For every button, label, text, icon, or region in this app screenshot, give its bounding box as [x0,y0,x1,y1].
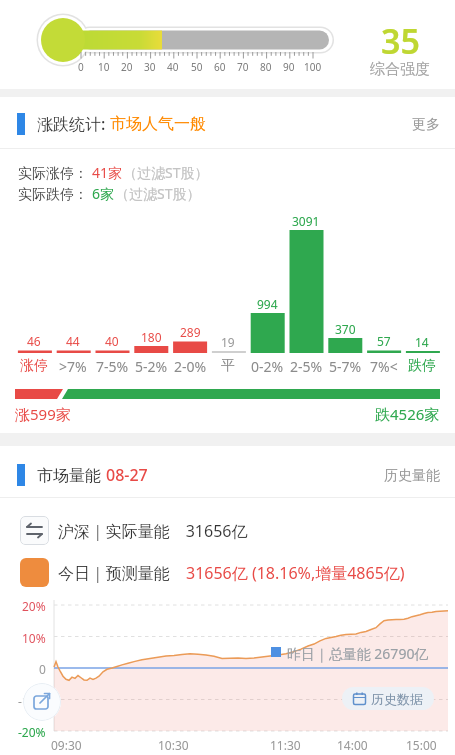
staticText: 实际跌停： [18,184,92,203]
staticText: 14:00 [337,737,368,752]
staticText: 11:30 [270,737,301,752]
staticText: 370 [335,321,356,336]
staticText: 10% [22,630,46,644]
staticText: 历史数据 [371,691,423,707]
staticText: 80 [260,60,272,72]
staticText: 昨日｜总量能 26790亿 [287,644,429,663]
staticText: 44 [66,333,80,348]
staticText: 5-7% [329,357,362,375]
staticText: （过滤ST股） [123,163,209,182]
staticText: 10:30 [158,737,189,752]
staticText: 0-2% [251,357,284,375]
staticText: 90 [283,60,295,72]
staticText: 5-2% [135,357,168,375]
staticText: 0 [78,60,84,72]
staticText: 31656亿 (18.16%,增量4865亿) [186,562,405,584]
staticText: 涨跌统计: [37,113,110,135]
staticText: >7% [59,357,87,375]
button[interactable]: 今日｜预测量能 [58,562,405,584]
staticText: 60 [214,60,226,72]
staticText: 09:30 [51,737,82,752]
staticText: 40 [105,333,119,348]
staticText: 跌4526家 [375,404,440,424]
staticText: 沪深｜实际量能 31656亿 [58,520,248,542]
staticText: 289 [180,324,201,339]
button[interactable]: 历史数据 [342,687,434,710]
staticText: 20% [22,598,46,612]
staticText: 7%< [370,357,398,375]
staticText: 今日｜预测量能 [58,562,186,584]
staticText: 35 [381,18,420,58]
staticText: -20% [18,724,46,738]
button[interactable]: 市场量能 [37,464,148,486]
staticText: 50 [191,60,203,72]
staticText: 46 [27,333,41,348]
staticText: （过滤ST股） [115,184,201,203]
staticText: 7-5% [96,357,129,375]
staticText: 08-27 [106,464,148,486]
staticText: 市场人气一般 [110,114,206,134]
staticText: 15:00 [406,737,437,752]
staticText: 0 [39,661,46,675]
staticText: 综合强度 [370,60,430,78]
staticText: -10% [18,693,46,707]
staticText: 跌停 [408,357,436,375]
staticText: 更多 [412,116,440,134]
button[interactable] [370,466,440,486]
staticText: 70 [237,60,249,72]
button[interactable]: 涨跌统计: [37,113,206,135]
staticText: 40 [167,60,179,72]
button[interactable] [398,115,440,135]
staticText: 20 [121,60,133,72]
staticText: 6家 [92,184,115,203]
staticText: 涨停 [20,357,48,375]
staticText: 100 [304,60,322,72]
staticText: 2-0% [174,357,207,375]
staticText: 市场量能 [37,464,106,486]
staticText: 涨599家 [15,404,71,424]
button[interactable]: 沪深｜实际量能 31656亿 [58,520,248,542]
button[interactable] [23,683,61,721]
staticText: 实际涨停： [18,163,92,182]
staticText: 3091 [292,213,320,228]
staticText: 30 [144,60,156,72]
staticText: 历史量能 [384,467,440,485]
staticText: 平 [221,357,235,375]
staticText: 41家 [92,163,123,182]
staticText: 57 [377,333,391,348]
staticText: 10 [98,60,110,72]
staticText: 19 [221,334,235,349]
staticText: 994 [257,296,278,311]
staticText: 180 [141,329,162,344]
staticText: 14 [415,334,429,349]
staticText: 2-5% [290,357,323,375]
